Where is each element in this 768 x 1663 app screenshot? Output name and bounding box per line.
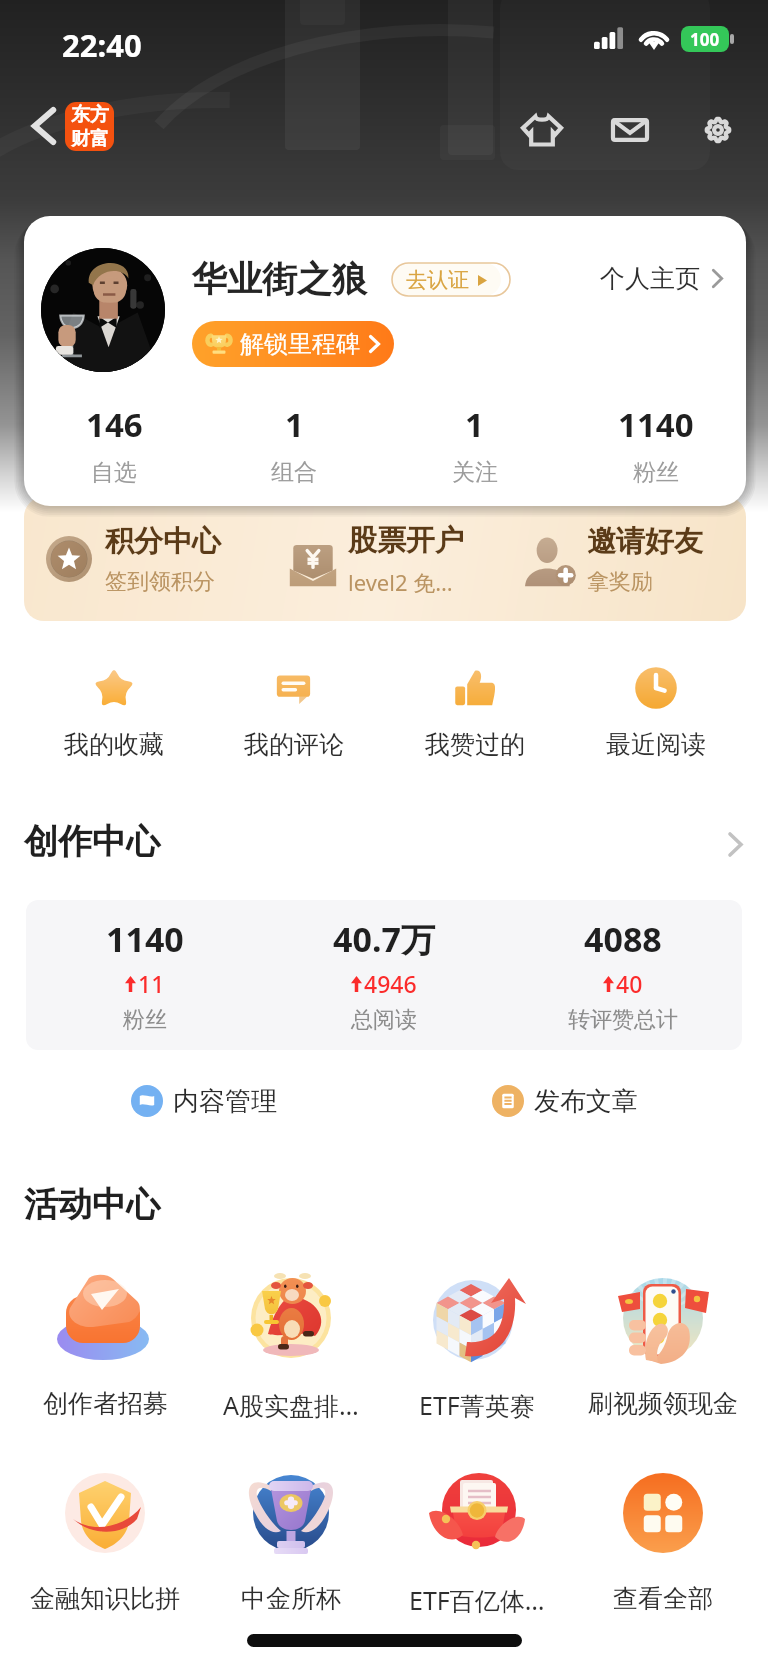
button[interactable]: More [706, 815, 764, 873]
button[interactable]: East Money [65, 102, 114, 151]
staticText: 11 [138, 968, 165, 999]
button[interactable]: 中金所杯 [198, 1463, 384, 1614]
staticText: 我的收藏 [64, 729, 164, 760]
button[interactable]: 我赞过的 [384, 662, 565, 760]
staticText: 签到领积分 [105, 568, 215, 596]
staticText: 转评赞总计 [568, 1006, 678, 1034]
button[interactable]: 金融知识比拼 [12, 1463, 198, 1614]
button[interactable]: 40.7万 [264, 916, 503, 1034]
button[interactable]: Back [16, 98, 72, 154]
button[interactable]: 1140 [565, 402, 746, 487]
staticText: 中金所杯 [241, 1583, 341, 1614]
button[interactable]: 去认证 [392, 263, 501, 296]
button[interactable]: 146 [24, 402, 204, 487]
staticText: 自选 [91, 458, 137, 487]
button[interactable]: 个人主页 [600, 263, 723, 294]
staticText: 邀请好友 [587, 523, 703, 560]
staticText: 1 [285, 402, 304, 447]
button[interactable]: 刷视频领现金 [570, 1268, 756, 1419]
staticText: 4946 [364, 968, 417, 999]
staticText: 146 [86, 402, 143, 447]
staticText: ETF菁英赛 [419, 1388, 535, 1422]
staticText: 总阅读 [351, 1006, 417, 1034]
staticText: 关注 [452, 458, 498, 487]
button[interactable]: Avatar [41, 248, 165, 372]
button[interactable]: 1 [204, 402, 384, 487]
staticText: 1140 [618, 402, 694, 447]
staticText: level2 免… [348, 567, 453, 597]
button[interactable]: 1 [384, 402, 565, 487]
staticText: 东方 [71, 103, 109, 127]
staticText: 1 [465, 402, 484, 447]
button[interactable]: 4088 [503, 916, 742, 1034]
button[interactable]: 我的评论 [204, 662, 384, 760]
button[interactable]: 积分中心 [44, 497, 221, 621]
button[interactable]: 发布文章 [482, 1078, 648, 1124]
button[interactable]: ETF菁英赛 [384, 1268, 570, 1422]
staticText: 4088 [584, 916, 662, 962]
button[interactable]: 1140 [26, 916, 264, 1034]
staticText: 40.7万 [333, 916, 435, 962]
staticText: 粉丝 [633, 458, 679, 487]
staticText: A股实盘排… [223, 1388, 359, 1422]
staticText: 发布文章 [534, 1085, 638, 1118]
staticText: 创作中心 [24, 820, 160, 863]
staticText: 积分中心 [105, 523, 221, 560]
button[interactable]: 查看全部 [570, 1463, 756, 1614]
button[interactable]: 我的收藏 [24, 662, 204, 760]
staticText: 100 [690, 28, 720, 51]
staticText: 拿奖励 [587, 568, 653, 596]
staticText: 22:40 [62, 24, 142, 66]
button[interactable]: ETF百亿体… [384, 1463, 570, 1617]
button[interactable]: A股实盘排… [198, 1268, 384, 1422]
staticText: 粉丝 [123, 1006, 167, 1034]
button[interactable]: Settings [688, 100, 748, 160]
button[interactable]: 解锁里程碑 [192, 321, 394, 367]
staticText: 股票开户 [348, 522, 464, 559]
staticText: 查看全部 [613, 1583, 713, 1614]
staticText: 财富 [71, 127, 109, 151]
staticText: 去认证 [406, 267, 469, 293]
staticText: 40 [616, 968, 643, 999]
staticText: ETF百亿体… [409, 1583, 545, 1617]
staticText: 活动中心 [24, 1183, 160, 1226]
staticText: 个人主页 [600, 263, 700, 294]
button[interactable]: 创作者招募 [12, 1268, 198, 1419]
button[interactable]: Messages [600, 100, 660, 160]
staticText: 刷视频领现金 [588, 1388, 738, 1419]
staticText: 金融知识比拼 [30, 1583, 180, 1614]
staticText: 我的评论 [244, 729, 344, 760]
staticText: 我赞过的 [425, 729, 525, 760]
staticText: 创作者招募 [43, 1388, 168, 1419]
button[interactable]: 邀请好友 [521, 497, 703, 621]
staticText: 组合 [271, 458, 317, 487]
button[interactable]: 最近阅读 [565, 662, 746, 760]
staticText: 解锁里程碑 [240, 329, 360, 359]
staticText: 1140 [106, 916, 184, 962]
staticText: 最近阅读 [606, 729, 706, 760]
button[interactable]: Shop [512, 100, 572, 160]
staticText: 华业街之狼 [192, 257, 367, 301]
staticText: 内容管理 [173, 1085, 277, 1118]
button[interactable]: 内容管理 [121, 1078, 287, 1124]
button[interactable]: 股票开户 [284, 497, 464, 621]
